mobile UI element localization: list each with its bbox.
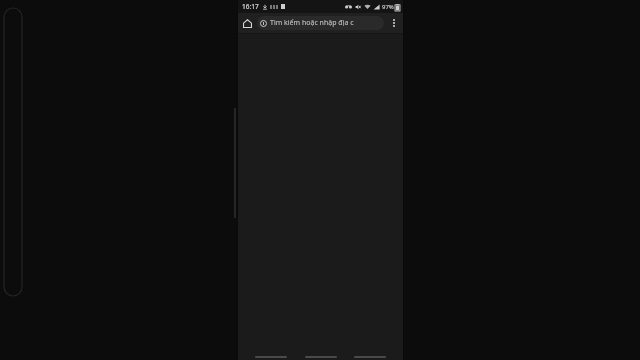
button[interactable]: More options (386, 15, 402, 31)
button[interactable]: Home (239, 15, 255, 31)
staticText: 97% (382, 3, 394, 11)
staticText: Tìm kiếm hoặc nhập địa c (270, 18, 354, 28)
staticText: 16:17 (242, 2, 259, 11)
button[interactable]: Tìm kiếm hoặc nhập địa c (257, 16, 384, 30)
